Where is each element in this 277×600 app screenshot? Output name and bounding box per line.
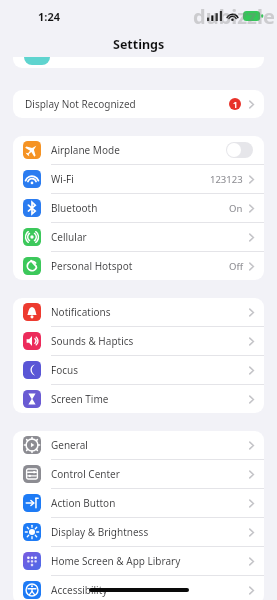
button[interactable]: Notifications (13, 298, 264, 327)
staticText: Wi-Fi (51, 172, 74, 186)
staticText: Display & Brightness (51, 525, 149, 539)
button[interactable]: Focus (13, 356, 264, 385)
staticText: Off (229, 260, 243, 273)
staticText: 1 (233, 99, 238, 110)
staticText: Personal Hotspot (51, 259, 133, 273)
button[interactable]: Action Button (13, 489, 264, 518)
button[interactable]: Cellular (13, 223, 264, 252)
staticText: Sounds & Haptics (51, 334, 134, 348)
button[interactable]: Display & Brightness (13, 518, 264, 547)
staticText: dubizzle (193, 3, 275, 30)
button[interactable]: Wi-Fi (13, 165, 264, 194)
button[interactable] (13, 57, 264, 68)
staticText: Screen Time (51, 392, 109, 406)
button[interactable]: Airplane Mode (13, 136, 264, 165)
staticText: Control Center (51, 467, 120, 481)
staticText: Action Button (51, 496, 116, 510)
button[interactable]: General (13, 431, 264, 460)
staticText: Focus (51, 363, 79, 377)
button[interactable]: Screen Time (13, 385, 264, 413)
button[interactable]: Personal Hotspot (13, 252, 264, 280)
staticText: Airplane Mode (51, 143, 120, 157)
staticText: Settings (113, 36, 165, 53)
staticText: Bluetooth (51, 201, 98, 215)
staticText: 1:24 (38, 9, 60, 24)
staticText: Home Screen & App Library (51, 554, 181, 568)
button[interactable]: Home Screen & App Library (13, 547, 264, 576)
button[interactable]: Airplane Mode toggle (226, 142, 253, 158)
button[interactable]: Bluetooth (13, 194, 264, 223)
staticText: Accessibility (51, 583, 108, 597)
staticText: 123123 (210, 173, 243, 186)
button[interactable]: Sounds & Haptics (13, 327, 264, 356)
staticText: Notifications (51, 305, 111, 319)
button[interactable]: Accessibility (13, 576, 264, 600)
button[interactable]: Control Center (13, 460, 264, 489)
button[interactable]: Display Not Recognized (13, 90, 264, 118)
staticText: On (229, 202, 243, 215)
staticText: Cellular (51, 230, 87, 244)
staticText: Display Not Recognized (25, 97, 136, 111)
staticText: General (51, 438, 88, 452)
